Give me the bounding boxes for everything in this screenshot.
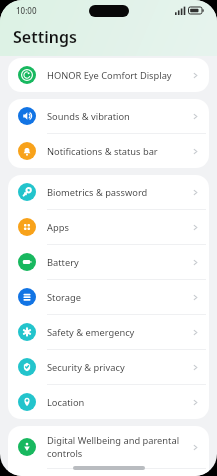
button[interactable]: Safety and emergency — [8, 315, 209, 350]
other: Location — [18, 393, 36, 411]
button[interactable]: Accessibility features — [8, 469, 209, 476]
staticText: Safety & emergency — [47, 326, 185, 339]
staticText: Storage — [47, 291, 185, 304]
staticText: Settings — [13, 26, 77, 48]
other: Apps — [18, 218, 36, 236]
staticText: Biometrics & password — [47, 186, 185, 199]
other: Battery — [18, 253, 36, 271]
staticText: Sounds & vibration — [47, 110, 185, 123]
staticText: Battery — [47, 256, 185, 269]
button[interactable]: Location — [8, 385, 209, 419]
other: Security and privacy — [18, 358, 36, 376]
button[interactable]: Apps — [8, 210, 209, 245]
other: Biometrics and password — [18, 183, 36, 201]
other: Sounds and vibration — [18, 107, 36, 125]
button[interactable]: Sounds and vibration — [8, 99, 209, 134]
staticText: Notifications & status bar — [47, 145, 185, 158]
button[interactable]: Notifications — [8, 134, 209, 168]
button[interactable]: Security and privacy — [8, 350, 209, 385]
button[interactable]: Battery — [8, 245, 209, 280]
other: Safety and emergency — [18, 323, 36, 341]
other: Notifications — [18, 142, 36, 160]
button[interactable]: Storage — [8, 280, 209, 315]
other: Digital Wellbeing — [18, 438, 36, 456]
staticText: Security & privacy — [47, 361, 185, 374]
staticText: Location — [47, 396, 185, 409]
other: Storage — [18, 288, 36, 306]
staticText: Apps — [47, 221, 185, 234]
button[interactable]: Eye comfort — [8, 58, 209, 92]
staticText: HONOR Eye Comfort Display — [47, 69, 185, 82]
button[interactable]: Digital Wellbeing — [8, 426, 209, 469]
button[interactable]: Biometrics and password — [8, 175, 209, 210]
other: Eye comfort — [18, 66, 36, 84]
staticText: 10:00 — [16, 5, 37, 16]
staticText: Digital Wellbeing and parental controls — [47, 434, 185, 460]
